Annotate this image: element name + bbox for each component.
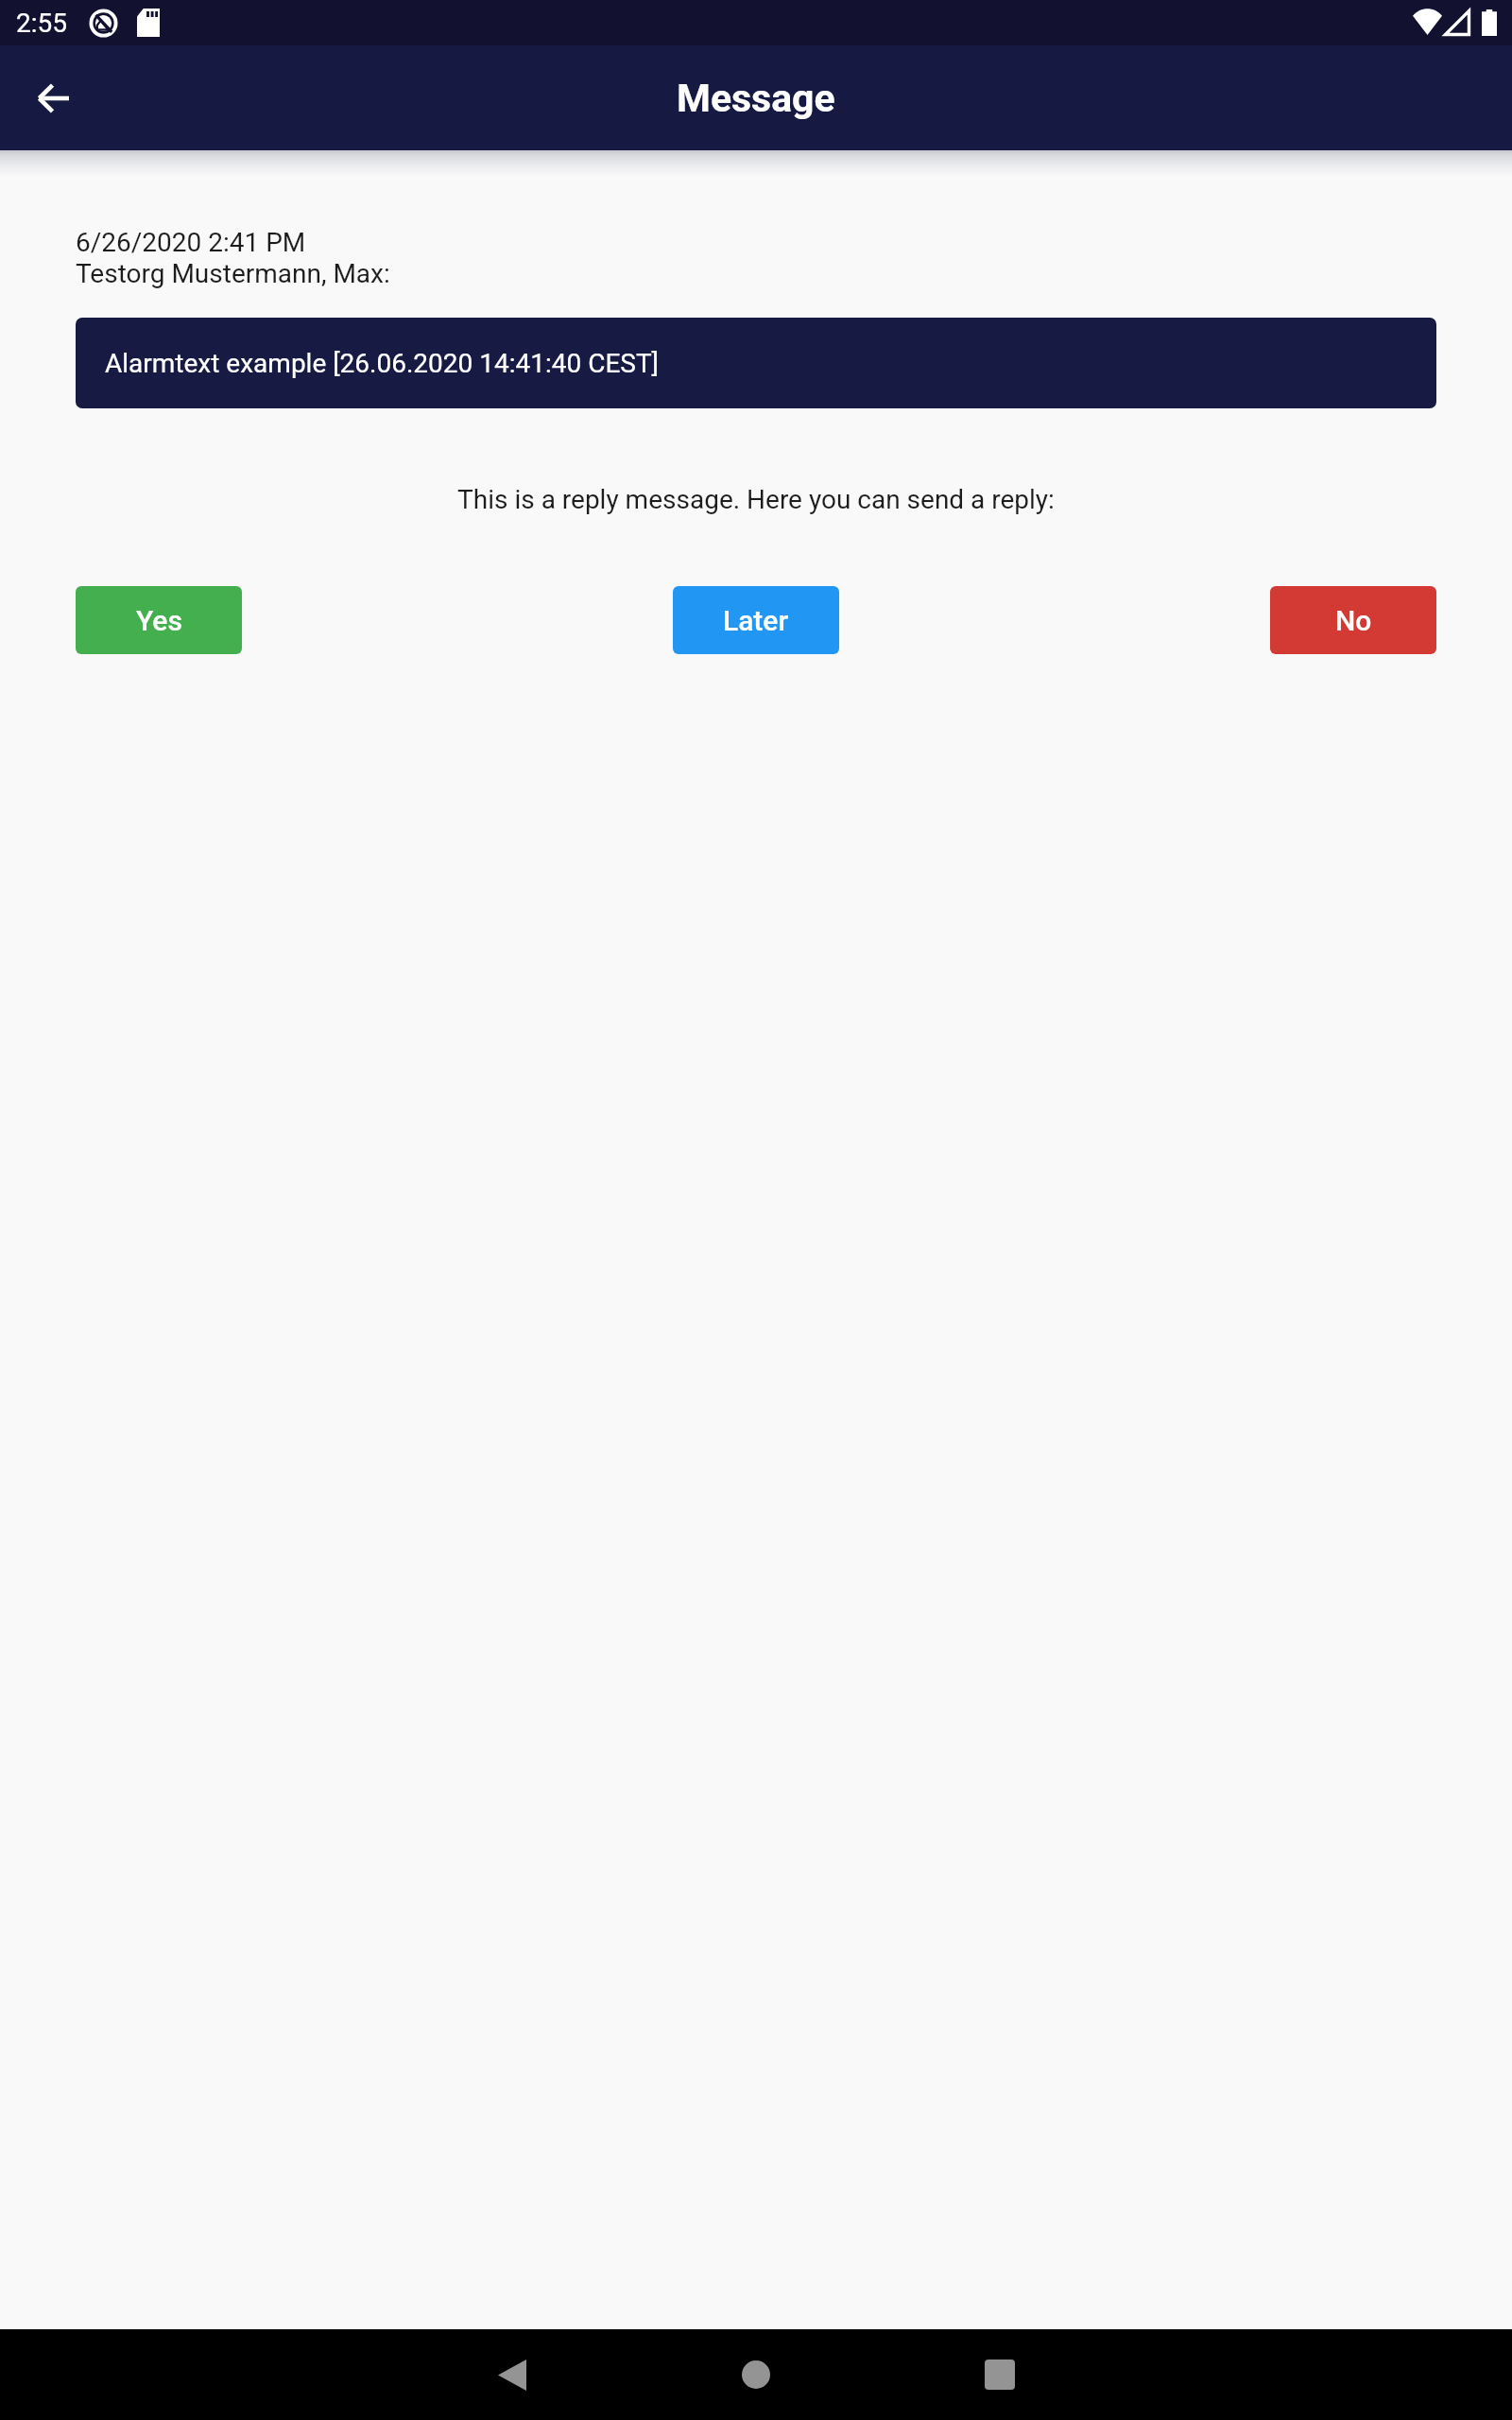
staticText: Testorg Mustermann, Max: — [76, 258, 390, 289]
button[interactable]: Yes — [76, 586, 242, 654]
staticText: This is a reply message. Here you can se… — [0, 484, 1512, 515]
button[interactable]: Recent apps — [964, 2339, 1036, 2411]
button[interactable]: Later — [673, 586, 839, 654]
button[interactable]: No — [1270, 586, 1436, 654]
staticText: Alarmtext example [26.06.2020 14:41:40 C… — [105, 348, 660, 379]
button[interactable]: Back — [476, 2339, 548, 2411]
staticText: Message — [677, 76, 835, 121]
staticText: Yes — [136, 604, 182, 637]
staticText: 2:55 — [16, 8, 67, 39]
staticText: 6/26/2020 2:41 PM — [76, 227, 306, 258]
staticText: Later — [723, 604, 789, 637]
button[interactable]: Home — [720, 2339, 792, 2411]
staticText: No — [1335, 604, 1372, 637]
button[interactable]: Back — [15, 60, 91, 136]
